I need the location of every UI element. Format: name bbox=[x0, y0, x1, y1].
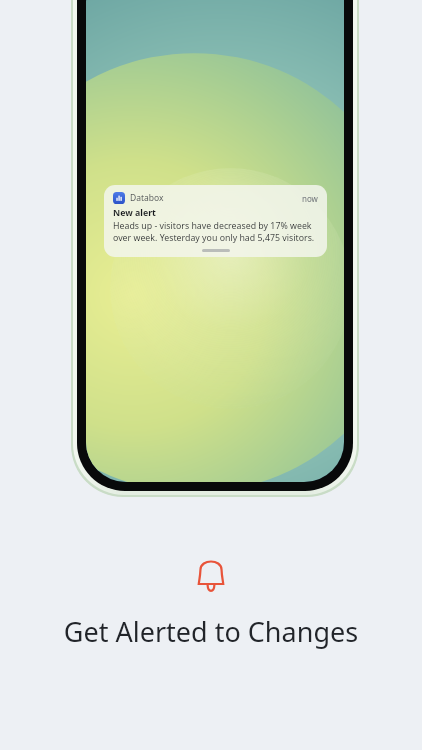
staticText: New alert bbox=[113, 207, 156, 219]
staticText: Get Alerted to Changes bbox=[0, 613, 422, 650]
staticText: now bbox=[302, 193, 318, 204]
staticText: Databox bbox=[130, 192, 164, 204]
other: Alerts bbox=[194, 556, 228, 596]
staticText: Heads up - visitors have decreased by 17… bbox=[113, 220, 318, 244]
button[interactable]: Databox bbox=[104, 185, 327, 257]
